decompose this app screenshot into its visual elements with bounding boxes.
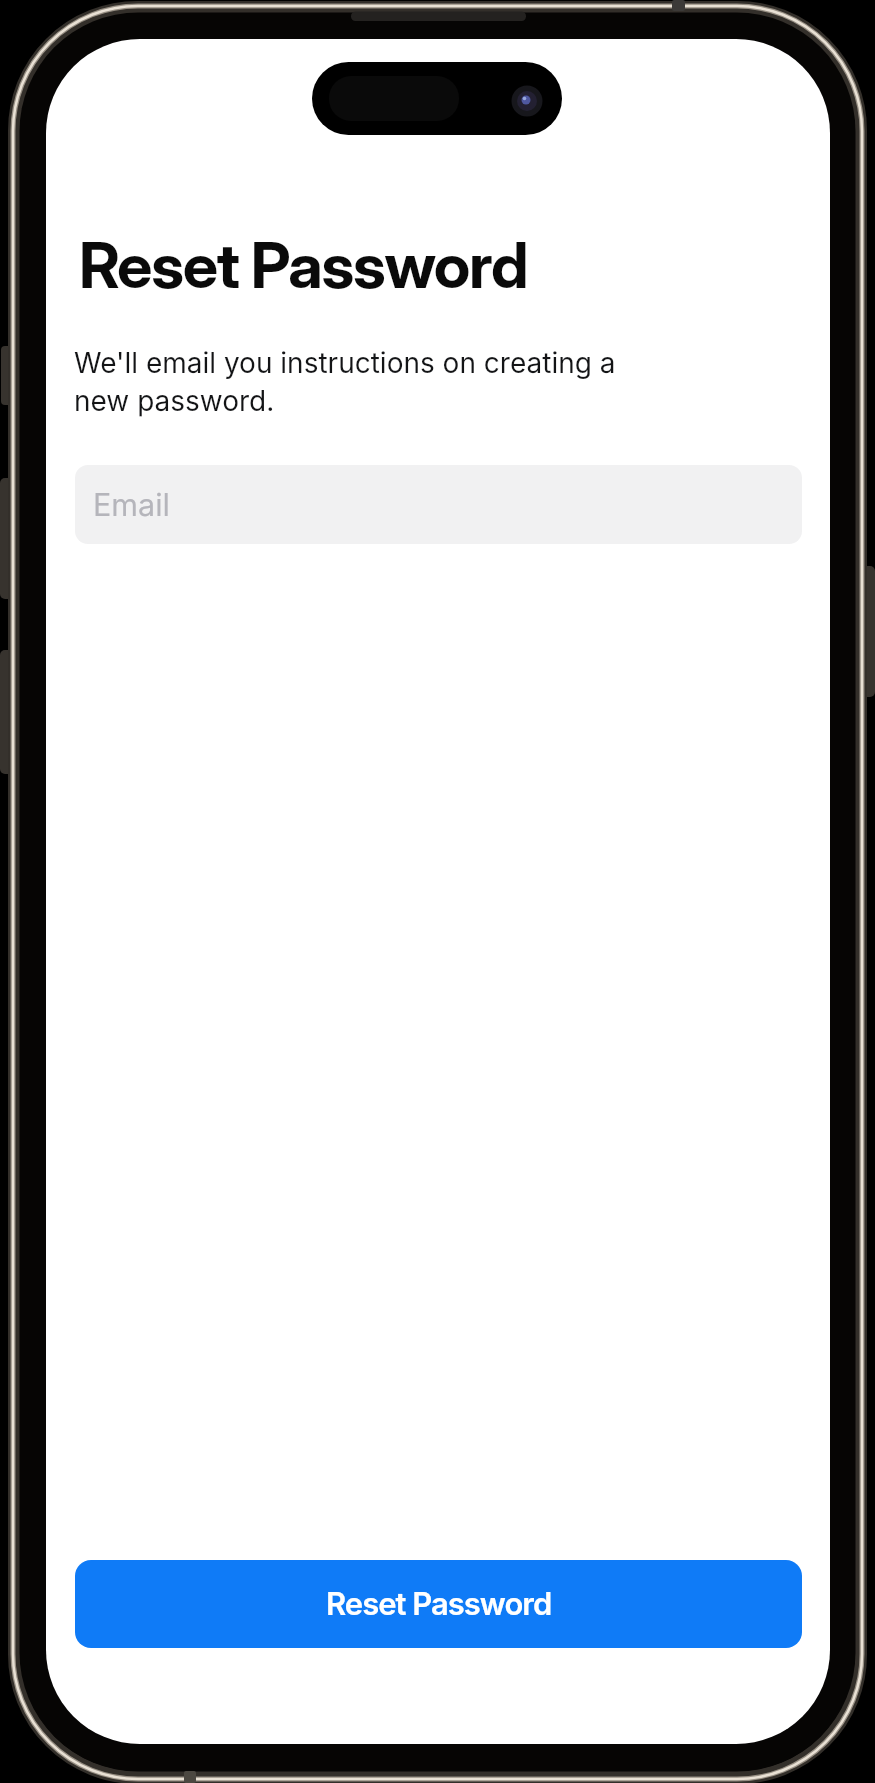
- button[interactable]: Email: [75, 465, 802, 544]
- staticText: Reset Password: [79, 227, 528, 303]
- staticText: Email: [93, 486, 170, 523]
- staticText: We'll email you instructions on creating…: [74, 346, 616, 418]
- staticText: Reset Password: [326, 1585, 552, 1623]
- button[interactable]: Reset Password: [75, 1560, 802, 1648]
